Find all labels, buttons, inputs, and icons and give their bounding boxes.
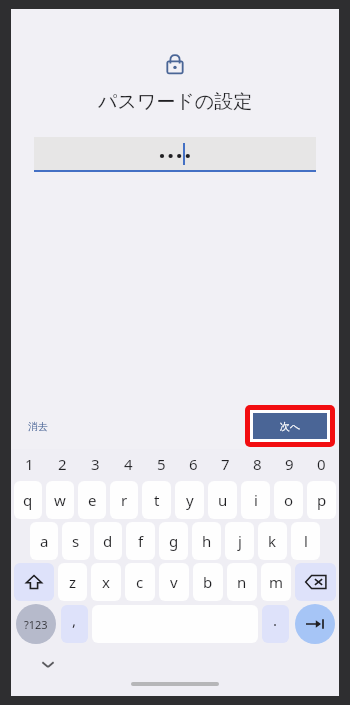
button[interactable]: 0 [305, 449, 337, 479]
button[interactable]: 次へ [253, 413, 327, 439]
button[interactable]: u [208, 481, 237, 519]
staticText: j [238, 531, 242, 551]
button[interactable]: k [258, 522, 287, 560]
button[interactable]: 6 [177, 449, 209, 479]
staticText: y [186, 490, 194, 510]
staticText: k [268, 531, 277, 551]
staticText: l [304, 531, 308, 551]
staticText: v [170, 572, 178, 592]
staticText: i [254, 490, 258, 510]
staticText: パスワードの設定 [98, 90, 253, 114]
button[interactable]: b [193, 563, 223, 601]
button[interactable]: 1 [13, 449, 46, 479]
staticText: 9 [285, 454, 294, 474]
button[interactable]: ?123 [16, 604, 56, 644]
staticText: s [72, 531, 80, 551]
staticText: h [202, 531, 212, 551]
button[interactable]: 消去 [23, 415, 53, 438]
staticText: z [69, 572, 77, 592]
button[interactable]: w [46, 481, 74, 519]
button[interactable]: Backspace [295, 563, 336, 601]
button[interactable]: r [110, 481, 138, 519]
staticText: 0 [317, 454, 326, 474]
button[interactable] [34, 137, 316, 170]
staticText: 5 [157, 454, 166, 474]
button[interactable]: Hide keyboard [37, 653, 59, 675]
staticText: b [203, 572, 213, 592]
staticText: n [237, 572, 247, 592]
staticText: 次へ [280, 420, 301, 433]
staticText: g [169, 531, 179, 551]
staticText: r [121, 490, 128, 510]
button[interactable]: 5 [145, 449, 177, 479]
button[interactable]: g [159, 522, 188, 560]
button[interactable]: d [94, 522, 122, 560]
staticText: 8 [253, 454, 262, 474]
button[interactable]: j [225, 522, 254, 560]
staticText: q [23, 490, 33, 510]
button[interactable]: c [125, 563, 155, 601]
button[interactable]: Shift [14, 563, 54, 601]
button[interactable]: n [227, 563, 257, 601]
button[interactable]: , [61, 605, 88, 643]
button[interactable]: l [291, 522, 320, 560]
staticText: w [54, 490, 66, 510]
staticText: e [88, 490, 97, 510]
button[interactable]: y [175, 481, 204, 519]
staticText: c [136, 572, 144, 592]
staticText: 7 [221, 454, 230, 474]
button[interactable]: e [78, 481, 106, 519]
staticText: 6 [189, 454, 198, 474]
button[interactable]: 2 [46, 449, 79, 479]
staticText: 2 [58, 454, 67, 474]
button[interactable]: p [307, 481, 336, 519]
button[interactable]: z [58, 563, 87, 601]
staticText: ?123 [24, 617, 48, 632]
other: Lock [163, 51, 187, 77]
button[interactable]: 7 [209, 449, 241, 479]
button[interactable]: x [91, 563, 121, 601]
button[interactable]: a [30, 522, 58, 560]
button[interactable]: 8 [241, 449, 273, 479]
staticText: a [40, 531, 49, 551]
staticText: t [154, 490, 160, 510]
staticText: 消去 [28, 420, 48, 433]
button[interactable]: Next [295, 604, 335, 644]
button[interactable]: . [262, 605, 289, 643]
button[interactable]: i [241, 481, 270, 519]
staticText: u [218, 490, 228, 510]
button[interactable]: m [261, 563, 291, 601]
staticText: 4 [124, 454, 133, 474]
staticText: d [103, 531, 113, 551]
button[interactable]: h [192, 522, 221, 560]
staticText: f [138, 531, 144, 551]
button[interactable]: o [274, 481, 303, 519]
button[interactable]: 9 [273, 449, 305, 479]
staticText: o [284, 490, 294, 510]
staticText: p [317, 490, 327, 510]
button[interactable]: 4 [112, 449, 145, 479]
button[interactable]: f [126, 522, 155, 560]
button[interactable]: t [142, 481, 171, 519]
staticText: . [273, 610, 278, 630]
staticText: 3 [91, 454, 100, 474]
button[interactable]: q [14, 481, 42, 519]
staticText: m [269, 572, 284, 592]
staticText: , [72, 610, 77, 630]
button[interactable]: v [159, 563, 189, 601]
staticText: 1 [25, 454, 34, 474]
staticText: x [102, 572, 110, 592]
button[interactable]: 3 [79, 449, 112, 479]
button[interactable]: s [62, 522, 90, 560]
